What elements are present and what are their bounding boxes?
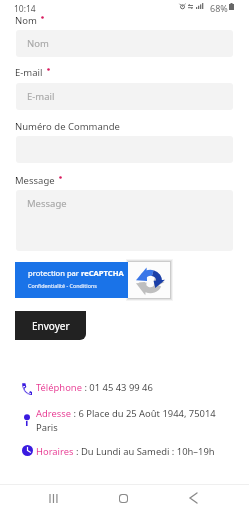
staticText: 68%: [210, 2, 228, 14]
button[interactable]: E-mail: [16, 83, 233, 110]
button[interactable]: Adresse sur la carte: [21, 412, 34, 427]
button[interactable]: Recents: [43, 488, 63, 508]
button[interactable]: Adresse : 6 Place du 25 Août 1944, 75014…: [36, 407, 216, 433]
button[interactable]: Appeler: [21, 382, 34, 396]
button[interactable]: Horaires: [21, 443, 34, 456]
staticText: Confidentialité - Conditions: [28, 282, 97, 289]
staticText: 10:14: [14, 3, 36, 15]
button[interactable]: Téléphone : 01 45 43 99 46: [36, 381, 153, 394]
button[interactable]: reCAPTCHA: [15, 262, 170, 298]
staticText: protection par reCAPTCHA: [28, 268, 124, 278]
button[interactable]: Envoyer: [15, 311, 86, 340]
button[interactable]: Home: [113, 488, 133, 508]
staticText: E-mail: [15, 66, 43, 79]
staticText: Nom: [27, 37, 49, 50]
staticText: E-mail: [27, 90, 55, 103]
staticText: Nom: [15, 14, 37, 27]
button[interactable]: Back: [183, 488, 203, 508]
button[interactable]: Nom: [16, 30, 233, 57]
staticText: Numéro de Commande: [15, 120, 120, 133]
button[interactable]: Message: [16, 190, 233, 251]
staticText: Message: [15, 174, 55, 187]
button[interactable]: Horaires : Du Lundi au Samedi : 10h–19h: [36, 445, 215, 458]
staticText: Message: [27, 197, 67, 210]
staticText: Envoyer: [32, 319, 70, 333]
